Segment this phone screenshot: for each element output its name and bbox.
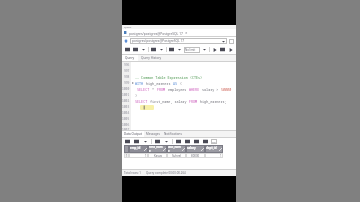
button[interactable]: Notifications — [162, 131, 184, 137]
staticText: -- Common Table Expression (CTEs) — [135, 75, 203, 80]
staticText: 1007 — [122, 128, 130, 130]
staticText: FROM — [157, 87, 166, 92]
button[interactable]: Open file — [124, 46, 131, 53]
staticText: Suheel — [172, 154, 182, 158]
button[interactable]: Graph — [202, 138, 209, 145]
button[interactable]: first_name — [148, 145, 167, 153]
button[interactable]: Copy rows — [124, 138, 131, 145]
button[interactable]: postgres/postgres@PostgreSQL 17 — [130, 38, 227, 44]
staticText: ) — [135, 93, 138, 98]
staticText: salary — [187, 146, 196, 150]
staticText: first_name, salary — [148, 99, 189, 104]
button[interactable]: Copy — [184, 138, 191, 145]
staticText: 999 — [124, 81, 130, 85]
staticText: 1004 — [122, 111, 130, 115]
staticText: 1 — [126, 154, 128, 158]
button[interactable]: Messages — [144, 131, 162, 137]
button[interactable]: Paste — [133, 138, 140, 145]
staticText: Data Output — [124, 132, 142, 136]
staticText: 1 — [145, 154, 147, 158]
staticText: 1005 — [122, 117, 130, 121]
button[interactable]: Panel options — [229, 39, 234, 44]
button[interactable]: Execute — [211, 46, 218, 53]
button[interactable]: Data Output — [122, 131, 144, 137]
staticText: high_earners — [146, 81, 171, 86]
button[interactable]: salary — [186, 145, 205, 153]
button[interactable]: Download — [193, 138, 200, 145]
staticText: 998 — [124, 75, 130, 79]
staticText: last_name — [168, 145, 182, 152]
staticText: 1006 — [122, 123, 130, 127]
button[interactable]: Query History — [138, 55, 165, 61]
staticText: 1001 — [122, 93, 130, 97]
staticText: AS — [171, 81, 178, 86]
staticText: integer — [206, 150, 215, 153]
staticText: SELECT — [135, 99, 148, 104]
button[interactable]: Save — [132, 46, 139, 53]
staticText: [PK] integer — [130, 150, 144, 153]
staticText: emp_id — [130, 146, 141, 150]
staticText: Query History — [141, 56, 162, 60]
staticText: Notifications — [164, 132, 182, 136]
button[interactable]: Paste options — [142, 138, 149, 145]
button[interactable]: Stop — [219, 46, 226, 53]
staticText: Total rows: 1 — [124, 171, 141, 175]
staticText: 1 — [220, 154, 222, 158]
staticText: Kavya — [154, 154, 162, 158]
button[interactable]: Delete row — [154, 138, 161, 145]
staticText: numeric — [187, 150, 197, 153]
button[interactable]: Edit options — [158, 46, 165, 53]
staticText: Query — [124, 25, 132, 28]
staticText: 50000 — [221, 87, 232, 92]
button[interactable]: SQL — [211, 139, 217, 144]
staticText: ✕ — [185, 31, 188, 34]
button[interactable]: Save data changes — [175, 138, 182, 145]
staticText: 1002 — [122, 99, 130, 103]
button[interactable]: postgres/postgres@PostgreSQL 17 — [124, 29, 234, 36]
staticText: first_name — [149, 145, 163, 152]
button[interactable]: emp_id — [129, 145, 148, 153]
button[interactable]: dept_id — [205, 145, 223, 153]
staticText: Query — [125, 56, 135, 60]
staticText: 997 — [124, 69, 130, 73]
staticText: FROM — [189, 99, 198, 104]
staticText: dept_id — [206, 146, 217, 150]
staticText: WHERE — [189, 87, 200, 92]
staticText: 80000 — [191, 154, 200, 158]
button[interactable]: Save options — [140, 46, 147, 53]
staticText: SQL — [212, 140, 217, 143]
button[interactable]: Delete options — [163, 138, 170, 145]
staticText: 1000 — [122, 87, 130, 91]
button[interactable]: Explain — [227, 46, 234, 53]
staticText: Messages — [146, 132, 160, 136]
button[interactable]: Edit — [150, 46, 157, 53]
staticText: salary > — [200, 87, 221, 92]
button[interactable]: No limit — [184, 47, 200, 53]
staticText: Query complete 00:00:00.264 — [146, 171, 186, 175]
button[interactable]: Filter options — [176, 46, 183, 53]
staticText: 1003 — [122, 105, 130, 109]
staticText: postgres/postgres@PostgreSQL 17 — [132, 39, 222, 43]
button[interactable]: Query — [122, 55, 138, 61]
staticText: postgres/postgres@PostgreSQL 17 — [129, 31, 183, 35]
staticText: WITH — [135, 81, 146, 86]
staticText: ( — [178, 81, 183, 86]
button[interactable]: Filter — [168, 46, 175, 53]
staticText: employees — [166, 87, 189, 92]
staticText: high_earners; — [198, 99, 227, 104]
staticText: SELECT — [137, 87, 150, 92]
staticText: * — [150, 87, 157, 92]
button[interactable]: Limit options — [201, 46, 208, 53]
staticText: 996 — [124, 63, 130, 67]
staticText: No limit — [185, 48, 196, 52]
button[interactable]: last_name — [167, 145, 186, 153]
